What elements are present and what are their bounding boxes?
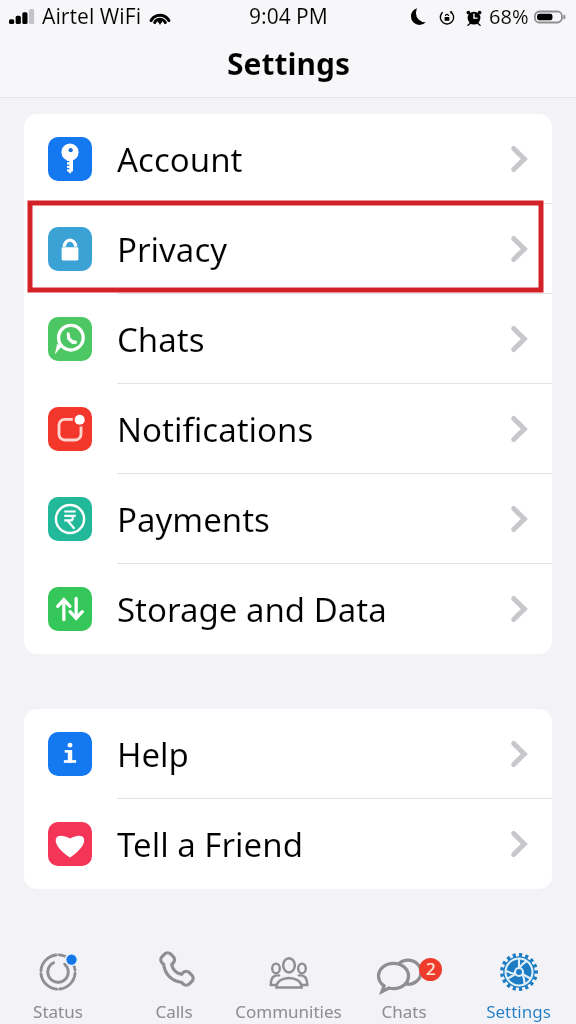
staticText: Tell a Friend: [117, 822, 303, 867]
button[interactable]: Storage and Data: [24, 564, 552, 654]
button[interactable]: Calls: [116, 931, 231, 1024]
staticText: Calls: [155, 1000, 193, 1023]
staticText: Privacy: [117, 227, 228, 272]
staticText: Chats: [117, 317, 205, 362]
button[interactable]: Help: [24, 709, 552, 799]
staticText: Status: [33, 1000, 83, 1023]
button[interactable]: Chats: [24, 294, 552, 384]
button[interactable]: Settings: [461, 931, 576, 1024]
staticText: Payments: [117, 497, 270, 542]
button[interactable]: Status: [0, 931, 116, 1024]
staticText: Notifications: [117, 407, 314, 452]
staticText: Airtel WiFi: [42, 2, 142, 31]
staticText: Storage and Data: [117, 587, 387, 632]
button[interactable]: Notifications: [24, 384, 552, 474]
button[interactable]: Communities: [231, 931, 346, 1024]
button[interactable]: Tell a Friend: [24, 799, 552, 889]
staticText: 68%: [489, 3, 529, 30]
staticText: Chats: [381, 1000, 427, 1023]
staticText: Account: [117, 137, 243, 182]
button[interactable]: Privacy: [24, 204, 552, 294]
staticText: Settings: [227, 43, 350, 84]
staticText: Settings: [486, 1000, 551, 1023]
staticText: Help: [117, 732, 189, 777]
button[interactable]: 2: [346, 931, 461, 1024]
staticText: Communities: [235, 1000, 342, 1023]
button[interactable]: Account: [24, 114, 552, 204]
staticText: 2: [426, 958, 436, 980]
staticText: 9:04 PM: [249, 2, 328, 31]
button[interactable]: Payments: [24, 474, 552, 564]
